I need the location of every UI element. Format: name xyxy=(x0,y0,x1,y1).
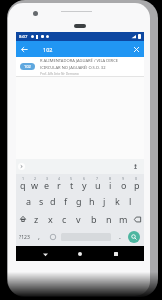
staticText: s xyxy=(39,195,44,207)
staticText: w xyxy=(31,179,39,191)
staticText: 102 xyxy=(43,46,53,53)
staticText: Prof. Alfr. Inte Nr Dernano xyxy=(40,72,79,76)
staticText: a xyxy=(26,195,32,207)
staticText: , xyxy=(38,232,40,242)
staticText: x xyxy=(48,213,53,225)
button[interactable]: 1 xyxy=(17,174,29,192)
staticText: r xyxy=(57,179,61,191)
staticText: 8:07 xyxy=(19,34,28,40)
staticText: h xyxy=(89,195,95,207)
button[interactable]: 8 xyxy=(104,174,117,192)
button[interactable]: Search xyxy=(128,231,140,243)
staticText: t xyxy=(70,179,74,191)
staticText: q xyxy=(20,179,26,191)
staticText: 7 xyxy=(96,176,99,181)
button[interactable]: x xyxy=(43,210,57,228)
staticText: j xyxy=(103,195,106,207)
button[interactable]: Emoji xyxy=(46,228,60,246)
button[interactable]: 2 xyxy=(29,174,41,192)
staticText: 102 xyxy=(24,64,31,69)
button[interactable]: Clear search xyxy=(128,41,144,57)
button[interactable]: Home xyxy=(73,247,87,261)
button[interactable]: 0 xyxy=(130,174,143,192)
button[interactable]: 3 xyxy=(41,174,53,192)
button[interactable]: s xyxy=(35,192,47,210)
staticText: (CIRCULAR NO JAGUARÉ) O.S.O. 32 xyxy=(40,65,106,71)
button[interactable]: . xyxy=(112,228,128,246)
staticText: 9 xyxy=(122,176,125,181)
staticText: o xyxy=(121,179,127,191)
staticText: 3 xyxy=(46,176,49,181)
button[interactable]: b xyxy=(86,210,101,228)
button[interactable]: ?123 xyxy=(16,228,32,246)
staticText: g xyxy=(76,195,82,207)
button[interactable]: c xyxy=(57,210,71,228)
staticText: k xyxy=(115,195,120,207)
button[interactable]: Recents xyxy=(109,247,123,261)
staticText: u xyxy=(95,179,101,191)
button[interactable]: z xyxy=(29,210,43,228)
staticText: p xyxy=(134,179,140,191)
staticText: 5 xyxy=(70,176,73,181)
button[interactable]: 102 xyxy=(16,57,144,76)
button[interactable]: j xyxy=(98,192,111,210)
button[interactable]: Voice input xyxy=(131,162,140,171)
staticText: b xyxy=(91,213,97,225)
button[interactable]: 7 xyxy=(91,174,104,192)
staticText: 8 xyxy=(109,176,112,181)
button[interactable]: Backspace xyxy=(131,210,144,228)
button[interactable]: More suggestions xyxy=(18,163,25,170)
button[interactable]: n xyxy=(101,210,116,228)
staticText: y xyxy=(82,179,87,191)
button[interactable]: l xyxy=(124,192,137,210)
staticText: z xyxy=(34,213,39,225)
staticText: f xyxy=(64,195,68,207)
button[interactable]: 5 xyxy=(65,174,78,192)
staticText: c xyxy=(62,213,67,225)
staticText: 2 xyxy=(34,176,37,181)
staticText: d xyxy=(50,195,56,207)
staticText: i xyxy=(109,179,112,191)
button[interactable]: , xyxy=(32,228,46,246)
button[interactable]: h xyxy=(85,192,98,210)
staticText: 1 xyxy=(22,176,25,181)
button[interactable]: 9 xyxy=(117,174,130,192)
staticText: n xyxy=(106,213,112,225)
button[interactable]: Shift xyxy=(16,210,29,228)
staticText: R ALIMENTADORA JAGUARÉ / VILA DIRCE xyxy=(40,58,119,64)
button[interactable]: 4 xyxy=(53,174,65,192)
button[interactable]: v xyxy=(71,210,86,228)
button[interactable]: f xyxy=(59,192,72,210)
button[interactable]: g xyxy=(72,192,85,210)
staticText: m xyxy=(119,213,128,225)
staticText: v xyxy=(76,213,81,225)
staticText: 0 xyxy=(135,176,138,181)
staticText: . xyxy=(119,232,121,242)
button[interactable]: Back xyxy=(38,247,52,261)
button[interactable]: d xyxy=(47,192,59,210)
staticText: l xyxy=(129,195,132,207)
staticText: e xyxy=(44,179,50,191)
staticText: 6 xyxy=(83,176,86,181)
staticText: ?123 xyxy=(19,234,30,241)
staticText: 4 xyxy=(58,176,61,181)
button[interactable]: m xyxy=(116,210,131,228)
button[interactable]: a xyxy=(23,192,35,210)
button[interactable]: k xyxy=(111,192,124,210)
button[interactable]: 6 xyxy=(78,174,91,192)
button[interactable]: Back xyxy=(16,41,32,57)
